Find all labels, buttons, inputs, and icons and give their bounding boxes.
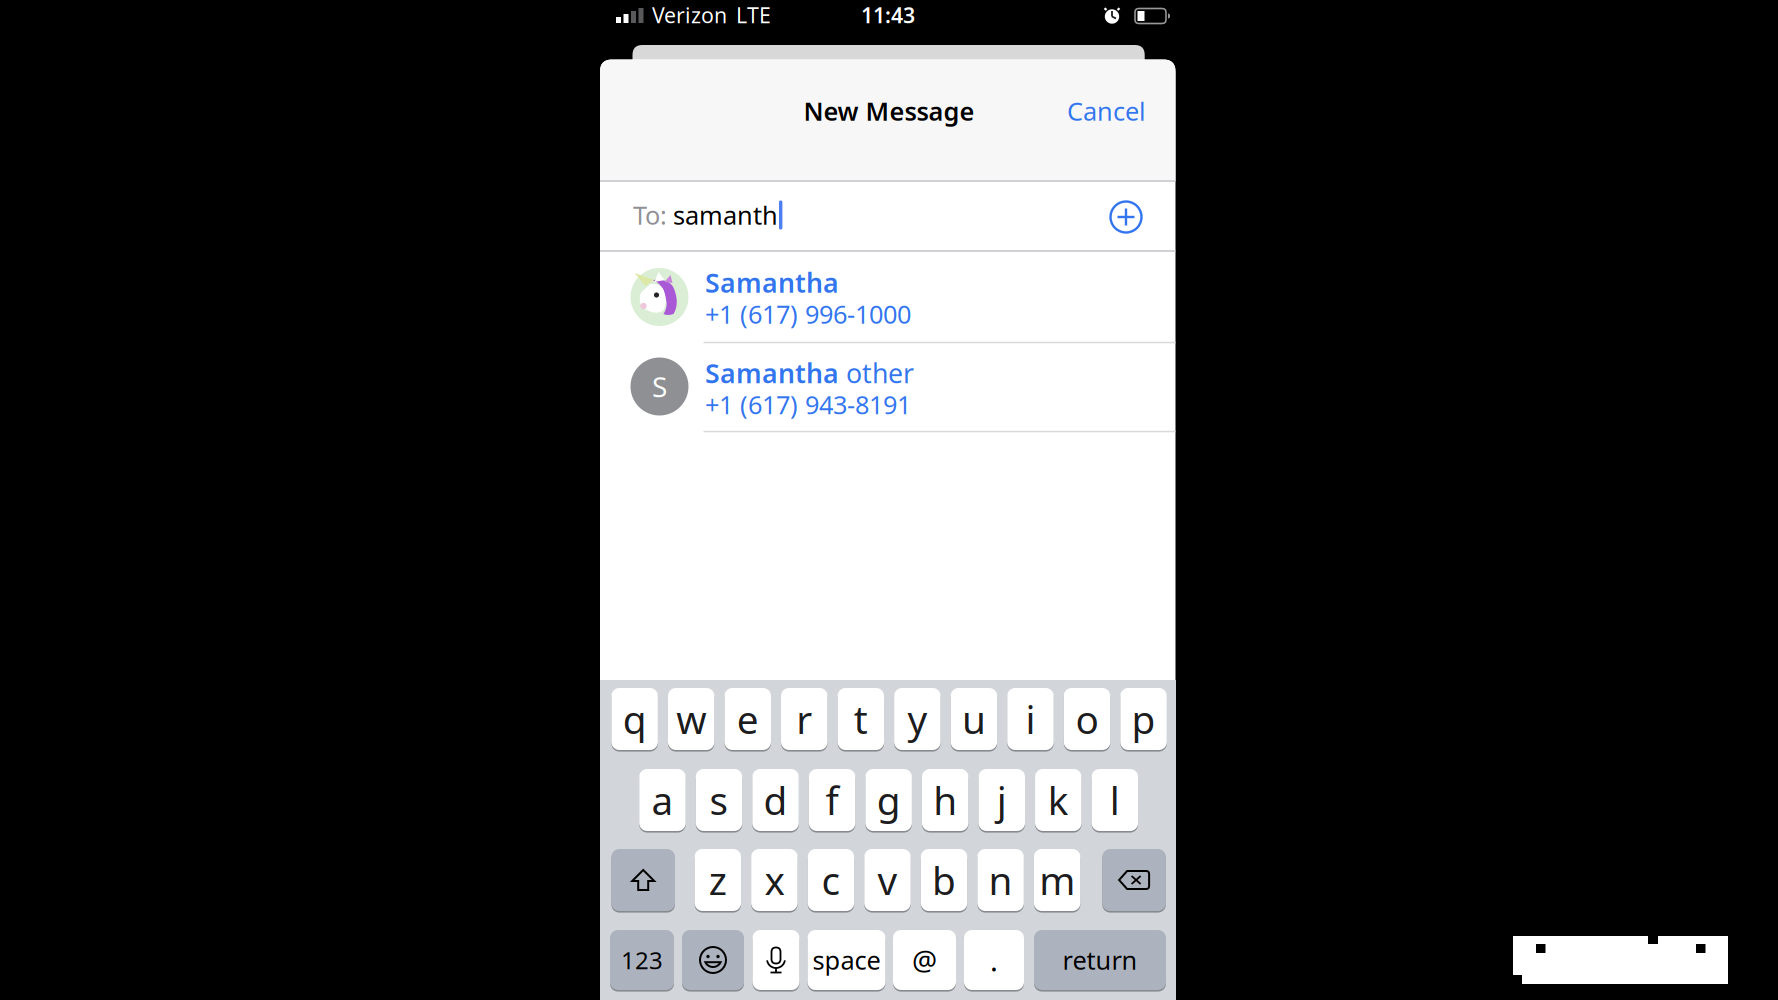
staticText: f xyxy=(826,774,839,826)
staticText: 123 xyxy=(621,944,663,976)
staticText: space xyxy=(812,943,880,977)
button[interactable]: j xyxy=(978,769,1025,831)
staticText: q xyxy=(623,693,647,745)
button[interactable]: x xyxy=(751,849,798,911)
button[interactable]: Samantha xyxy=(600,251,1175,341)
staticText: . xyxy=(990,940,998,979)
staticText: c xyxy=(821,854,840,906)
staticText: i xyxy=(1025,693,1035,745)
button[interactable]: Add Contact xyxy=(1104,195,1148,239)
staticText: z xyxy=(709,854,727,906)
button[interactable]: n xyxy=(977,849,1024,911)
staticText: LTE xyxy=(736,1,771,29)
staticText: t xyxy=(854,693,868,745)
staticText: l xyxy=(1110,774,1120,826)
button[interactable]: d xyxy=(752,769,799,831)
button[interactable]: i xyxy=(1007,688,1054,750)
staticText: v xyxy=(877,854,897,906)
button[interactable]: o xyxy=(1064,688,1110,750)
staticText: +1 (617) 943-8191 xyxy=(705,388,911,421)
button[interactable]: h xyxy=(922,769,968,831)
button[interactable]: 123 xyxy=(610,930,674,990)
staticText: n xyxy=(989,854,1013,906)
button[interactable]: v xyxy=(864,849,911,911)
staticText: New Message xyxy=(803,94,974,128)
staticText: k xyxy=(1048,774,1069,826)
button[interactable]: r xyxy=(781,688,827,750)
staticText: S xyxy=(652,368,667,405)
staticText: j xyxy=(997,774,1007,826)
staticText: @ xyxy=(912,941,937,979)
staticText: Samantha other xyxy=(705,355,914,391)
staticText: r xyxy=(796,693,812,745)
staticText: return xyxy=(1062,943,1137,977)
button[interactable]: Delete xyxy=(1102,849,1166,911)
staticText: h xyxy=(933,774,957,826)
staticText: 11:43 xyxy=(861,1,915,29)
button[interactable]: y xyxy=(894,688,941,750)
staticText: +1 (617) 996-1000 xyxy=(705,297,911,331)
staticText: g xyxy=(877,774,901,826)
button[interactable]: S xyxy=(600,342,1175,431)
button[interactable]: . xyxy=(964,930,1024,990)
staticText: p xyxy=(1132,693,1156,745)
staticText: Samantha xyxy=(705,265,839,300)
staticText: e xyxy=(737,693,759,745)
staticText: s xyxy=(709,774,728,826)
button[interactable]: u xyxy=(951,688,997,750)
staticText: x xyxy=(764,854,784,906)
button[interactable]: q xyxy=(611,688,658,750)
button[interactable]: g xyxy=(865,769,912,831)
button[interactable]: z xyxy=(695,849,741,911)
staticText: samanth xyxy=(673,198,778,232)
button[interactable]: return xyxy=(1034,930,1166,990)
staticText: To: xyxy=(633,198,667,232)
button[interactable]: p xyxy=(1120,688,1167,750)
button[interactable]: w xyxy=(668,688,714,750)
staticText: m xyxy=(1039,854,1075,906)
button[interactable]: Cancel xyxy=(1036,86,1146,136)
button[interactable]: m xyxy=(1034,849,1080,911)
button[interactable]: c xyxy=(808,849,854,911)
button[interactable]: k xyxy=(1035,769,1082,831)
button[interactable]: t xyxy=(838,688,884,750)
staticText: w xyxy=(676,693,706,745)
staticText: d xyxy=(764,774,788,826)
staticText: a xyxy=(651,774,673,826)
button[interactable]: l xyxy=(1092,769,1138,831)
button[interactable]: Dictate xyxy=(752,930,799,990)
button[interactable]: e xyxy=(724,688,771,750)
button[interactable]: Emoji xyxy=(682,930,744,990)
button[interactable]: @ xyxy=(893,930,956,990)
staticText: Verizon xyxy=(652,1,727,29)
staticText: o xyxy=(1075,693,1098,745)
button[interactable]: f xyxy=(809,769,855,831)
button[interactable]: s xyxy=(696,769,742,831)
button[interactable]: Shift xyxy=(611,849,675,911)
staticText: u xyxy=(962,693,986,745)
staticText: b xyxy=(932,854,956,906)
button[interactable]: a xyxy=(639,769,686,831)
button[interactable]: space xyxy=(807,930,885,990)
staticText: Cancel xyxy=(1067,94,1146,128)
staticText: y xyxy=(907,693,927,745)
button[interactable]: b xyxy=(921,849,967,911)
